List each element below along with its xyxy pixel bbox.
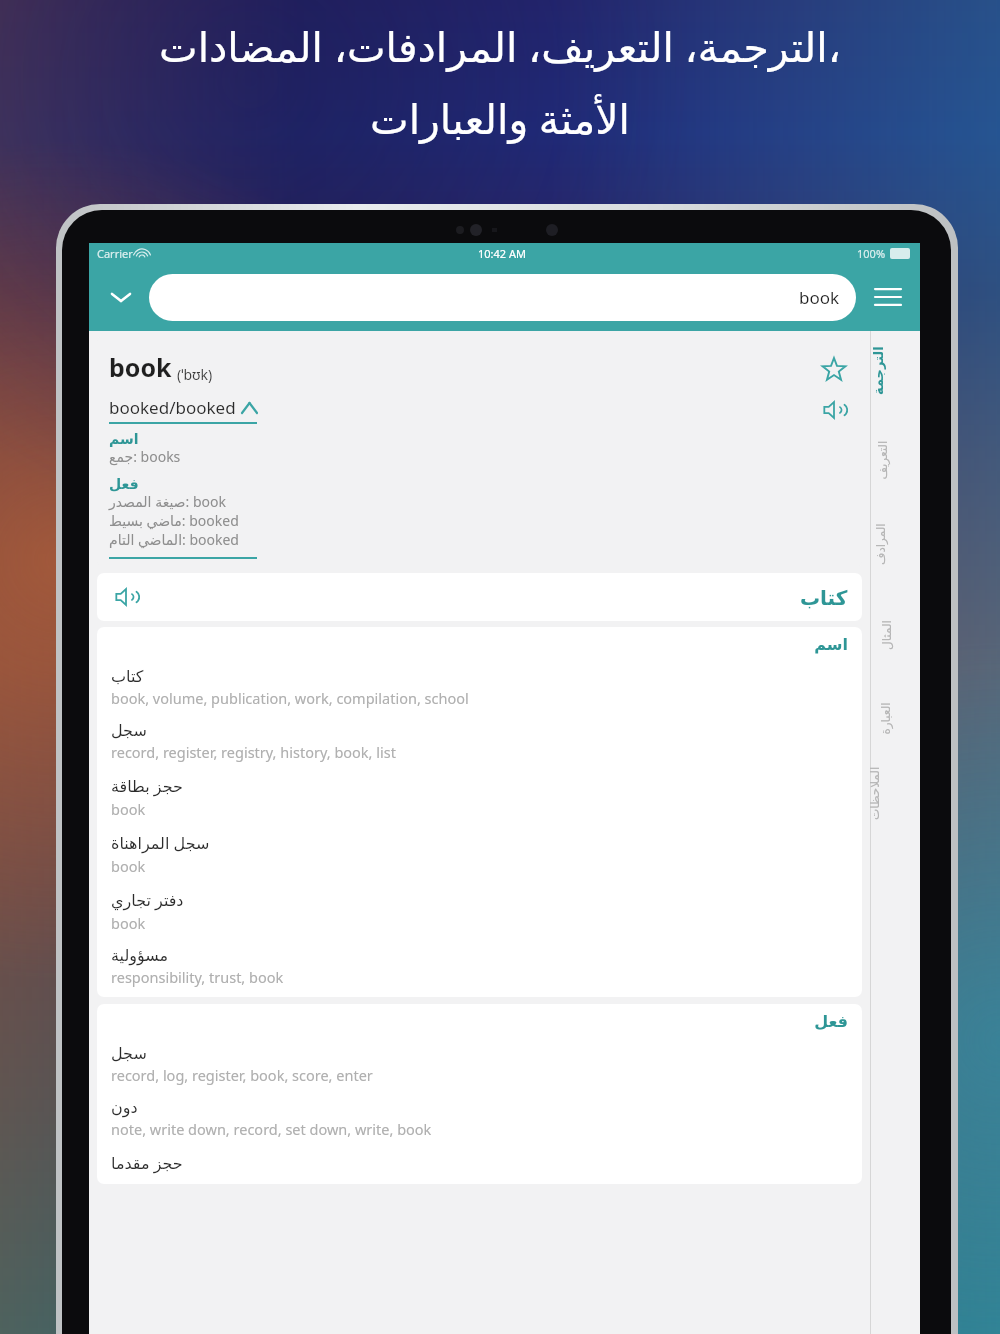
staticText: فعل — [111, 1012, 848, 1031]
staticText: ماضي بسيط: booked — [109, 511, 239, 530]
staticText: حجز مقدما — [111, 1152, 183, 1174]
staticText: book — [111, 799, 146, 819]
staticText: العبارة — [878, 701, 892, 734]
staticText: فعل — [109, 476, 139, 492]
button[interactable]: Pronounce translation — [111, 582, 141, 612]
staticText: note, write down, record, set down, writ… — [111, 1119, 432, 1139]
staticText: booked/booked — [109, 396, 236, 419]
staticText: التعريف — [875, 440, 889, 479]
staticText: الملاحظات — [868, 766, 882, 820]
staticText: مسؤولية — [111, 946, 169, 965]
staticText: اسم — [111, 635, 848, 654]
staticText: book — [109, 350, 172, 384]
staticText: المرادف — [874, 523, 888, 565]
button[interactable]: Pronounce — [814, 390, 854, 430]
staticText: سجل — [111, 1044, 147, 1063]
button[interactable]: book — [149, 274, 856, 321]
staticText: اسم — [109, 431, 139, 447]
staticText: حجز بطاقة — [111, 775, 183, 797]
staticText: كتاب — [111, 667, 144, 686]
button[interactable]: الملاحظات — [870, 770, 920, 855]
button[interactable]: التعريف — [870, 430, 920, 515]
staticText: صيغة المصدر: book — [109, 492, 226, 511]
staticText: كتاب — [800, 586, 848, 609]
button[interactable]: العبارة — [870, 685, 920, 770]
button[interactable]: booked/booked — [109, 396, 257, 424]
button[interactable]: Menu — [866, 275, 910, 319]
staticText: المثال — [880, 620, 894, 650]
staticText: الترجمة — [871, 346, 886, 395]
staticText: دفتر تجاري — [111, 889, 184, 911]
staticText: responsibility, trust, book — [111, 967, 284, 987]
button[interactable]: Collapse — [99, 275, 143, 319]
button[interactable]: Pronounce translation — [97, 573, 862, 621]
staticText: سجل — [111, 721, 147, 740]
staticText: الترجمة، التعريف، المرادفات، المضادات، — [159, 18, 841, 74]
staticText: book, volume, publication, work, compila… — [111, 688, 469, 708]
button[interactable]: book — [97, 336, 862, 567]
staticText: (ˈbʊk) — [177, 365, 213, 384]
staticText: 10:42 AM — [478, 246, 526, 261]
button[interactable]: فعل — [97, 1004, 862, 1184]
button[interactable]: الترجمة — [870, 345, 920, 430]
button[interactable]: Favorite — [814, 350, 854, 390]
button[interactable]: المرادف — [870, 515, 920, 600]
staticText: جمع: books — [109, 447, 181, 466]
staticText: Carrier — [97, 246, 133, 261]
staticText: الأمثة والعبارات — [370, 90, 630, 146]
staticText: record, log, register, book, score, ente… — [111, 1065, 373, 1085]
staticText: سجل المراهناة — [111, 832, 210, 854]
staticText: دون — [111, 1098, 138, 1117]
button[interactable]: اسم — [97, 627, 862, 997]
staticText: book — [111, 913, 146, 933]
staticText: 100% — [857, 246, 886, 261]
button[interactable]: المثال — [870, 600, 920, 685]
staticText: record, register, registry, history, boo… — [111, 742, 396, 762]
staticText: الماضي التام: booked — [109, 530, 239, 549]
staticText: book — [111, 856, 146, 876]
staticText: book — [799, 286, 840, 309]
